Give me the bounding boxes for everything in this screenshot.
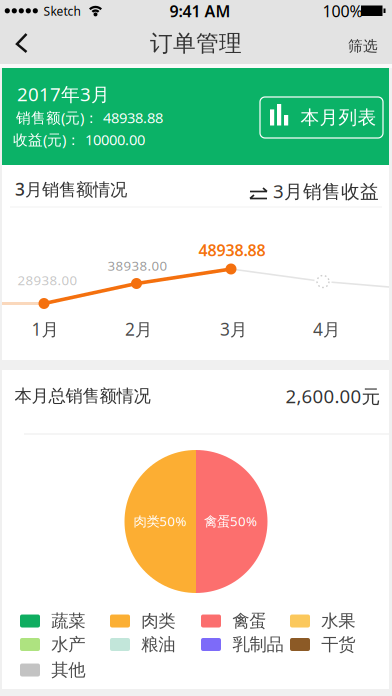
staticText: 筛选 [348,37,378,55]
staticText: 订单管理 [150,30,242,57]
staticText: Sketch [43,3,80,19]
staticText: 水果 [321,610,355,632]
button[interactable]: 3月销售收益 [250,179,379,203]
staticText: 粮油 [141,634,175,655]
staticText: 禽蛋 [232,610,266,632]
staticText: 销售额(元)： 48938.88 [16,108,163,127]
button[interactable]: 本月列表 [260,97,383,138]
staticText: 1月 [31,317,58,340]
staticText: 28938.00 [17,271,77,289]
staticText: 38938.00 [107,257,167,274]
staticText: 收益(元)： 10000.00 [13,130,145,149]
staticText: 乳制品 [232,634,283,655]
staticText: 3月 [220,317,247,340]
staticText: 禽蛋50% [204,512,257,530]
staticText: 2,600.00元 [285,384,380,408]
staticText: 3月销售额情况 [15,177,127,200]
button[interactable]: Back [14,32,30,54]
staticText: 9:41 AM [169,0,230,22]
staticText: 4月 [313,317,340,340]
staticText: 48938.88 [198,239,265,261]
staticText: 2月 [125,317,152,340]
staticText: 本月列表 [300,106,376,129]
staticText: 水产 [51,634,85,655]
staticText: 其他 [51,659,85,681]
staticText: 干货 [321,634,355,655]
staticText: 肉类50% [133,512,186,530]
staticText: 100% [322,0,362,22]
staticText: 3月销售收益 [273,179,379,203]
button[interactable]: 筛选 [348,37,378,55]
staticText: 蔬菜 [51,610,85,632]
staticText: 本月总销售额情况 [14,385,150,407]
staticText: 2017年3月 [17,82,110,106]
staticText: 肉类 [141,610,175,632]
